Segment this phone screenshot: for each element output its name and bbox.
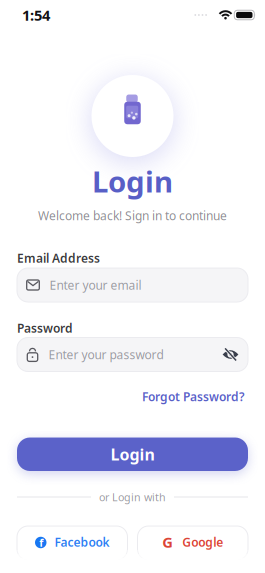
staticText: Welcome back! Sign in to continue [38, 207, 227, 223]
staticText: Facebook [54, 534, 109, 550]
staticText: Login [92, 161, 173, 200]
staticText: Login [110, 444, 154, 465]
button[interactable]: G [137, 526, 248, 560]
staticText: Google [182, 534, 223, 550]
staticText: Enter your password [48, 346, 163, 362]
staticText: 1:54 [22, 5, 50, 25]
button[interactable]: Forgot Password? [142, 390, 245, 403]
staticText: Email Address [17, 250, 100, 266]
button[interactable]: f [17, 526, 127, 560]
staticText: Password [17, 320, 73, 336]
staticText: Forgot Password? [142, 388, 245, 404]
staticText: f [39, 535, 43, 550]
staticText: G [162, 532, 173, 552]
staticText: Enter your email [49, 277, 141, 293]
button[interactable] [222, 347, 248, 361]
staticText: or Login with [99, 490, 166, 504]
button[interactable]: Login [17, 437, 248, 471]
